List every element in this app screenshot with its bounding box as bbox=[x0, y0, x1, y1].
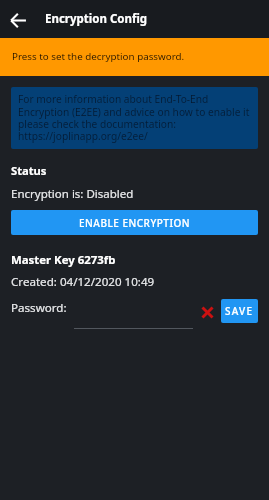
button[interactable]: ENABLE ENCRYPTION bbox=[11, 210, 258, 235]
staticText: Status bbox=[11, 163, 47, 178]
button[interactable]: Back bbox=[0, 0, 36, 38]
staticText: ENABLE ENCRYPTION bbox=[79, 216, 191, 230]
staticText: Encryption is: Disabled bbox=[11, 186, 134, 202]
staticText: Encryption Config bbox=[45, 11, 148, 27]
staticText: Press to set the decryption password. bbox=[12, 50, 185, 63]
staticText: For more information about End-To-End En… bbox=[18, 92, 251, 143]
staticText: Master Key 6273fb bbox=[11, 252, 116, 268]
button[interactable]: Password field bbox=[74, 293, 193, 329]
staticText: Created: 04/12/2020 10:49 bbox=[11, 274, 155, 290]
button[interactable]: Press to set the decryption password. bbox=[0, 38, 269, 76]
button[interactable]: SAVE bbox=[221, 299, 258, 323]
staticText: SAVE bbox=[225, 304, 254, 318]
staticText: Password: bbox=[11, 300, 67, 316]
button[interactable]: Clear password bbox=[194, 299, 220, 325]
